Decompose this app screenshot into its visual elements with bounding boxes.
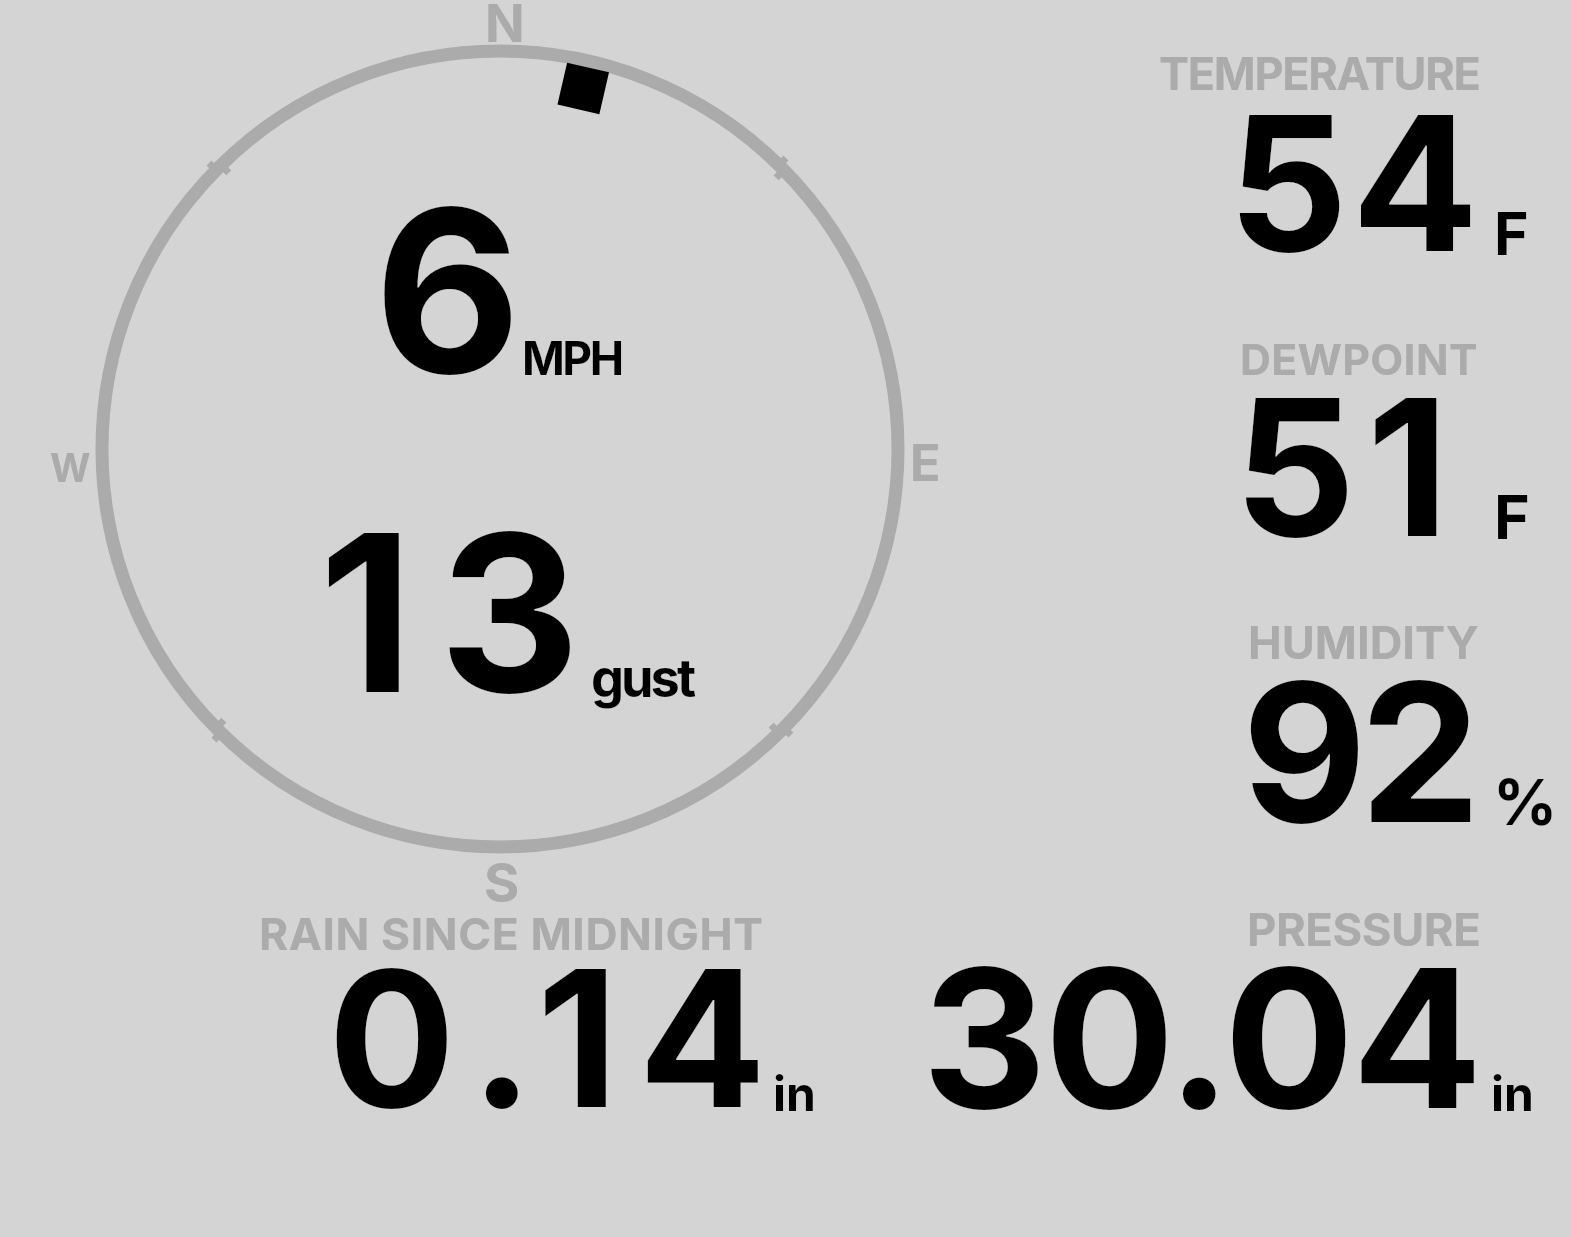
staticText: PRESSURE — [1247, 902, 1481, 957]
staticText: % — [1493, 764, 1558, 841]
staticText: in — [1491, 1064, 1534, 1122]
button[interactable]: Dew point 51 degrees Fahrenheit — [1100, 330, 1560, 550]
staticText: 30.04 — [922, 921, 1481, 1155]
staticText: MPH — [522, 330, 622, 386]
staticText: 0.14 — [328, 924, 787, 1153]
staticText: W — [50, 444, 91, 491]
staticText: in — [773, 1064, 816, 1122]
staticText: 54 — [1228, 69, 1483, 296]
staticText: S — [484, 850, 520, 915]
staticText: F — [1494, 480, 1530, 554]
button[interactable]: Rain since midnight 0.14 inches — [240, 900, 830, 1120]
staticText: RAIN SINCE MIDNIGHT — [259, 907, 764, 961]
staticText: HUMIDITY — [1248, 615, 1479, 670]
staticText: 92 — [1242, 636, 1474, 868]
staticText: TEMPERATURE — [1159, 46, 1480, 100]
staticText: F — [1494, 198, 1529, 269]
button[interactable]: Pressure 30.04 inches — [900, 895, 1560, 1120]
staticText: 6 — [374, 153, 522, 427]
button[interactable]: Wind speed 6 miles per hour, gusting 13,… — [90, 40, 910, 860]
staticText: E — [910, 432, 941, 493]
staticText: N — [485, 0, 525, 55]
staticText: 13 — [319, 481, 607, 745]
staticText: gust — [591, 646, 694, 709]
staticText: DEWPOINT — [1240, 334, 1478, 386]
button[interactable]: Temperature 54 degrees Fahrenheit — [1100, 40, 1560, 270]
staticText: 51 — [1234, 352, 1460, 582]
button[interactable]: Humidity 92 percent — [1100, 610, 1560, 835]
